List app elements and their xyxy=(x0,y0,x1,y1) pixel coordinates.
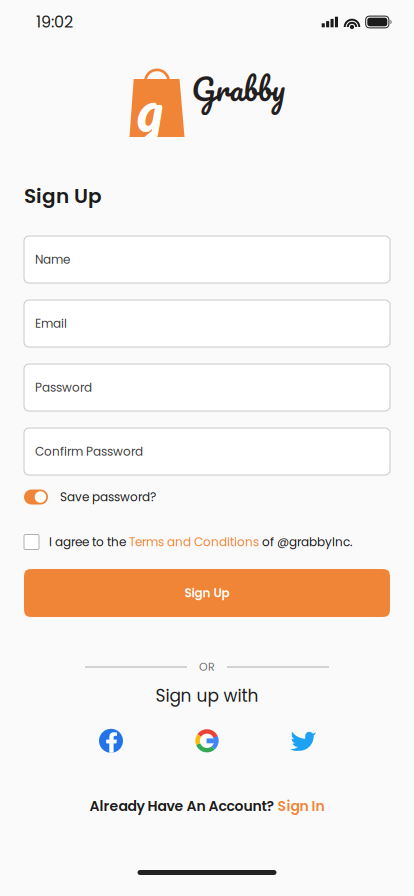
button[interactable]: Email xyxy=(24,300,390,347)
staticText: I agree to the xyxy=(49,534,129,550)
button[interactable]: Name xyxy=(24,236,390,283)
staticText: Grabby xyxy=(191,62,284,115)
staticText: Terms and Conditions xyxy=(129,534,259,550)
button[interactable]: Sign up with Facebook xyxy=(63,728,159,754)
staticText: g xyxy=(135,51,163,160)
button[interactable]: Sign up with Twitter xyxy=(255,728,351,754)
staticText: Confirm Password xyxy=(35,443,143,460)
staticText: OR xyxy=(199,659,215,675)
button[interactable]: Confirm Password xyxy=(24,428,390,475)
button[interactable]: I agree to the xyxy=(0,533,414,551)
staticText: Save password? xyxy=(60,489,156,505)
staticText: Sign Up xyxy=(24,182,102,210)
staticText: Sign In xyxy=(277,796,324,816)
button[interactable]: Password xyxy=(24,364,390,411)
button[interactable]: Sign Up xyxy=(24,569,390,617)
staticText: 19:02 xyxy=(36,11,73,33)
staticText: Name xyxy=(35,251,70,268)
button[interactable]: Save password? xyxy=(0,486,414,508)
button[interactable]: Sign up with Google xyxy=(159,728,255,754)
staticText: of @grabbyInc. xyxy=(259,534,353,550)
staticText: Sign up with xyxy=(155,684,258,708)
staticText: Already Have An Account? xyxy=(89,796,277,816)
staticText: Sign Up xyxy=(184,585,229,601)
button[interactable]: Already Have An Account? xyxy=(89,796,324,816)
staticText: Password xyxy=(35,379,92,396)
staticText: Email xyxy=(35,315,67,332)
